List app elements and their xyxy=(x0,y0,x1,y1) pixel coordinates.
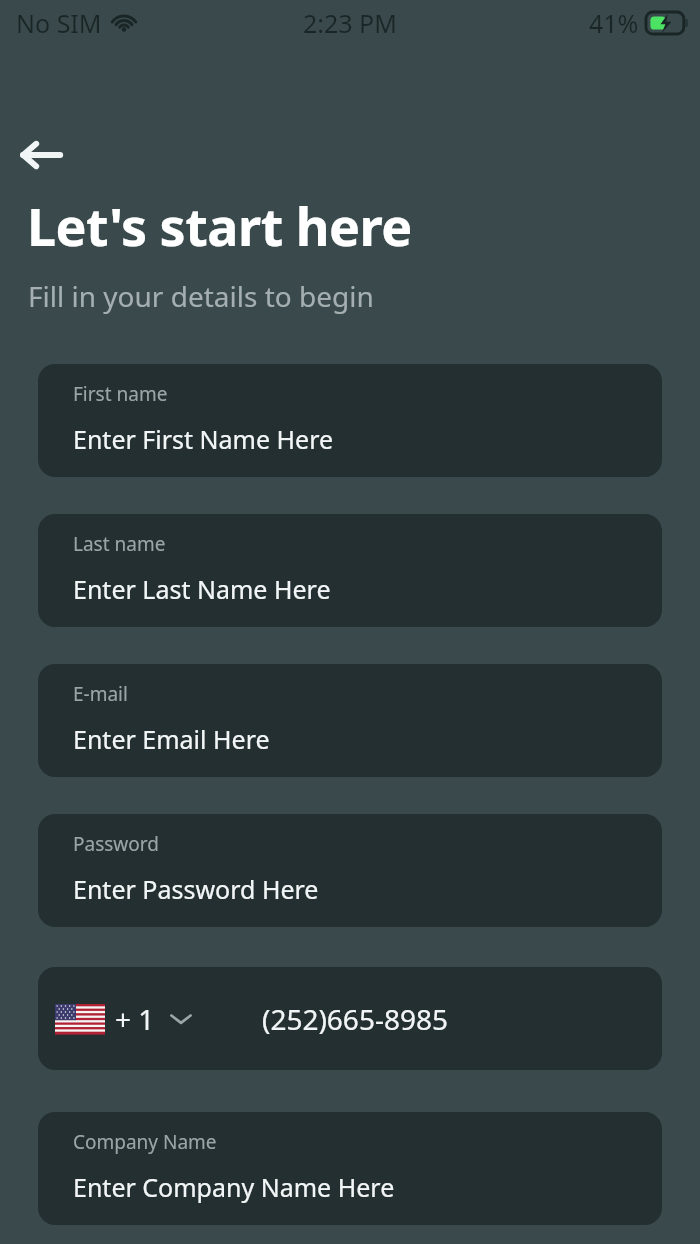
staticText: First name xyxy=(73,381,168,407)
button[interactable]: Back xyxy=(21,135,71,175)
staticText: Let's start here xyxy=(27,190,412,261)
button[interactable]: Select country code xyxy=(38,967,662,1070)
staticText: (252)665-8985 xyxy=(262,1000,448,1038)
staticText: Company Name xyxy=(73,1129,217,1155)
button[interactable]: Last name xyxy=(38,514,662,627)
staticText: 2:23 PM xyxy=(303,6,397,40)
button[interactable]: Company Name xyxy=(38,1112,662,1225)
staticText: Enter Email Here xyxy=(73,722,270,756)
staticText: E-mail xyxy=(73,681,128,707)
staticText: Enter Company Name Here xyxy=(73,1170,395,1204)
staticText: Enter First Name Here xyxy=(73,422,334,456)
button[interactable]: First name xyxy=(38,364,662,477)
staticText: Enter Last Name Here xyxy=(73,572,331,606)
staticText: No SIM xyxy=(16,6,102,40)
button[interactable]: E-mail xyxy=(38,664,662,777)
staticText: Fill in your details to begin xyxy=(28,277,374,315)
staticText: + 1 xyxy=(115,1000,155,1038)
staticText: Last name xyxy=(73,531,166,557)
staticText: Enter Password Here xyxy=(73,872,319,906)
staticText: Password xyxy=(73,831,159,857)
button[interactable]: Select country code xyxy=(55,1000,193,1038)
button[interactable]: Password xyxy=(38,814,662,927)
staticText: 41% xyxy=(589,6,639,40)
